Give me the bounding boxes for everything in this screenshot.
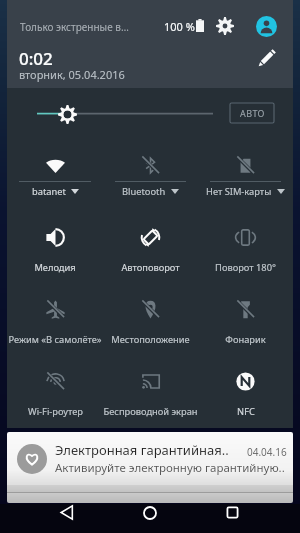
button[interactable]: batanet	[7, 143, 103, 215]
staticText: batanet	[32, 185, 66, 198]
staticText: Беспроводной экран	[103, 405, 198, 418]
button[interactable]: Edit quick settings	[253, 45, 279, 71]
staticText: Фонарик	[225, 333, 266, 346]
staticText: Активируйте электронную гарантийную..	[55, 460, 285, 476]
staticText: Режим «В самолёте»	[8, 333, 102, 346]
button[interactable]: Wi-Fi-роутер	[7, 359, 103, 431]
button[interactable]: Нет SIM-карты	[198, 143, 293, 215]
staticText: Электронная гарантийная..	[55, 441, 229, 459]
button[interactable]: АВТО	[230, 103, 274, 123]
button[interactable]: Фонарик	[198, 287, 293, 359]
button[interactable]: Поворот 180°	[198, 215, 293, 287]
button[interactable]: Беспроводной экран	[103, 359, 198, 431]
button[interactable]: Электронная гарантийная..	[7, 432, 293, 503]
staticText: Bluetooth	[122, 185, 166, 198]
staticText: Местоположение	[111, 333, 190, 346]
staticText: Нет SIM-карты	[206, 185, 272, 198]
button[interactable]: Bluetooth	[103, 143, 198, 215]
staticText: 0:02	[19, 47, 53, 70]
button[interactable]: Home	[108, 504, 191, 521]
button[interactable]: Recent apps	[191, 504, 274, 521]
staticText: Автоповорот	[121, 261, 180, 274]
button[interactable]: Back	[26, 504, 108, 521]
button[interactable]: Brightness	[57, 104, 77, 124]
button[interactable]: Settings	[213, 14, 237, 38]
staticText: АВТО	[240, 107, 265, 119]
button[interactable]: Местоположение	[103, 287, 198, 359]
staticText: вторник, 05.04.2016	[19, 67, 125, 82]
button[interactable]: Режим «В самолёте»	[7, 287, 103, 359]
staticText: Поворот 180°	[215, 261, 276, 274]
button[interactable]: Автоповорот	[103, 215, 198, 287]
staticText: 100 %	[164, 19, 195, 34]
staticText: Мелодия	[34, 261, 76, 274]
button[interactable]: NFC	[198, 359, 293, 431]
staticText: Только экстренные в…	[20, 20, 129, 34]
staticText: Wi-Fi-роутер	[28, 405, 83, 418]
button[interactable]: Мелодия	[7, 215, 103, 287]
staticText: NFC	[237, 405, 255, 418]
staticText: 04.04.16	[247, 445, 287, 459]
button[interactable]: User profile	[254, 14, 278, 38]
